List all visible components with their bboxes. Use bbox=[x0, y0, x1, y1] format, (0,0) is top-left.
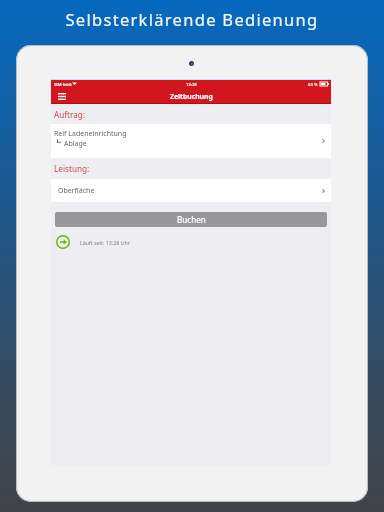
button[interactable]: Menu bbox=[55, 90, 68, 103]
staticText: Zeitbuchung bbox=[170, 92, 213, 101]
staticText: Auftrag: bbox=[54, 109, 86, 120]
staticText: 13:28 bbox=[186, 82, 197, 88]
staticText: Selbsterklärende Bedienung bbox=[65, 8, 319, 30]
staticText: Buchen bbox=[177, 214, 206, 225]
button[interactable]: Oberfläche bbox=[51, 179, 331, 202]
staticText: Leistung: bbox=[54, 163, 90, 174]
staticText: Ablage bbox=[64, 139, 87, 149]
staticText: SIM fehlt bbox=[54, 82, 72, 88]
staticText: Reif Ladeneinrichtung bbox=[54, 129, 127, 139]
staticText: Läuft seit: 13:28 Uhr bbox=[80, 239, 130, 246]
button[interactable]: Reif Ladeneinrichtung bbox=[51, 124, 331, 158]
staticText: Oberfläche bbox=[58, 186, 95, 196]
staticText: 63 % bbox=[308, 82, 318, 88]
button[interactable]: Buchen bbox=[55, 212, 327, 227]
